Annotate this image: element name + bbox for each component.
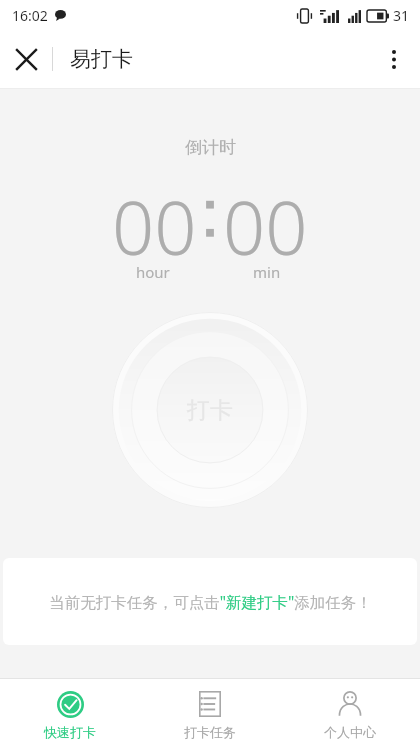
staticText: 打卡任务 <box>184 724 236 740</box>
staticText: 当前无打卡任务，可点击"新建打卡"添加任务！ <box>49 591 372 612</box>
staticText: 快速打卡 <box>44 724 96 740</box>
staticText: 00 <box>223 176 308 260</box>
staticText: hour <box>136 262 170 282</box>
staticText: 31 <box>393 6 410 25</box>
button[interactable]: 快速打卡 <box>0 679 140 747</box>
staticText: 00 <box>112 176 197 260</box>
staticText: min <box>253 262 281 282</box>
button[interactable]: More options <box>368 33 420 85</box>
button[interactable]: 当前无打卡任务，可点击"新建打卡"添加任务！ <box>3 558 417 645</box>
staticText: 16:02 <box>12 6 48 25</box>
staticText: 倒计时 <box>185 137 236 158</box>
staticText: 易打卡 <box>70 46 133 72</box>
staticText: 个人中心 <box>324 724 376 740</box>
button[interactable]: 打卡任务 <box>140 679 280 747</box>
staticText: 打卡 <box>187 396 233 425</box>
button[interactable]: 打卡 <box>112 312 308 508</box>
button[interactable]: 个人中心 <box>280 679 420 747</box>
button[interactable]: Close <box>0 33 52 85</box>
